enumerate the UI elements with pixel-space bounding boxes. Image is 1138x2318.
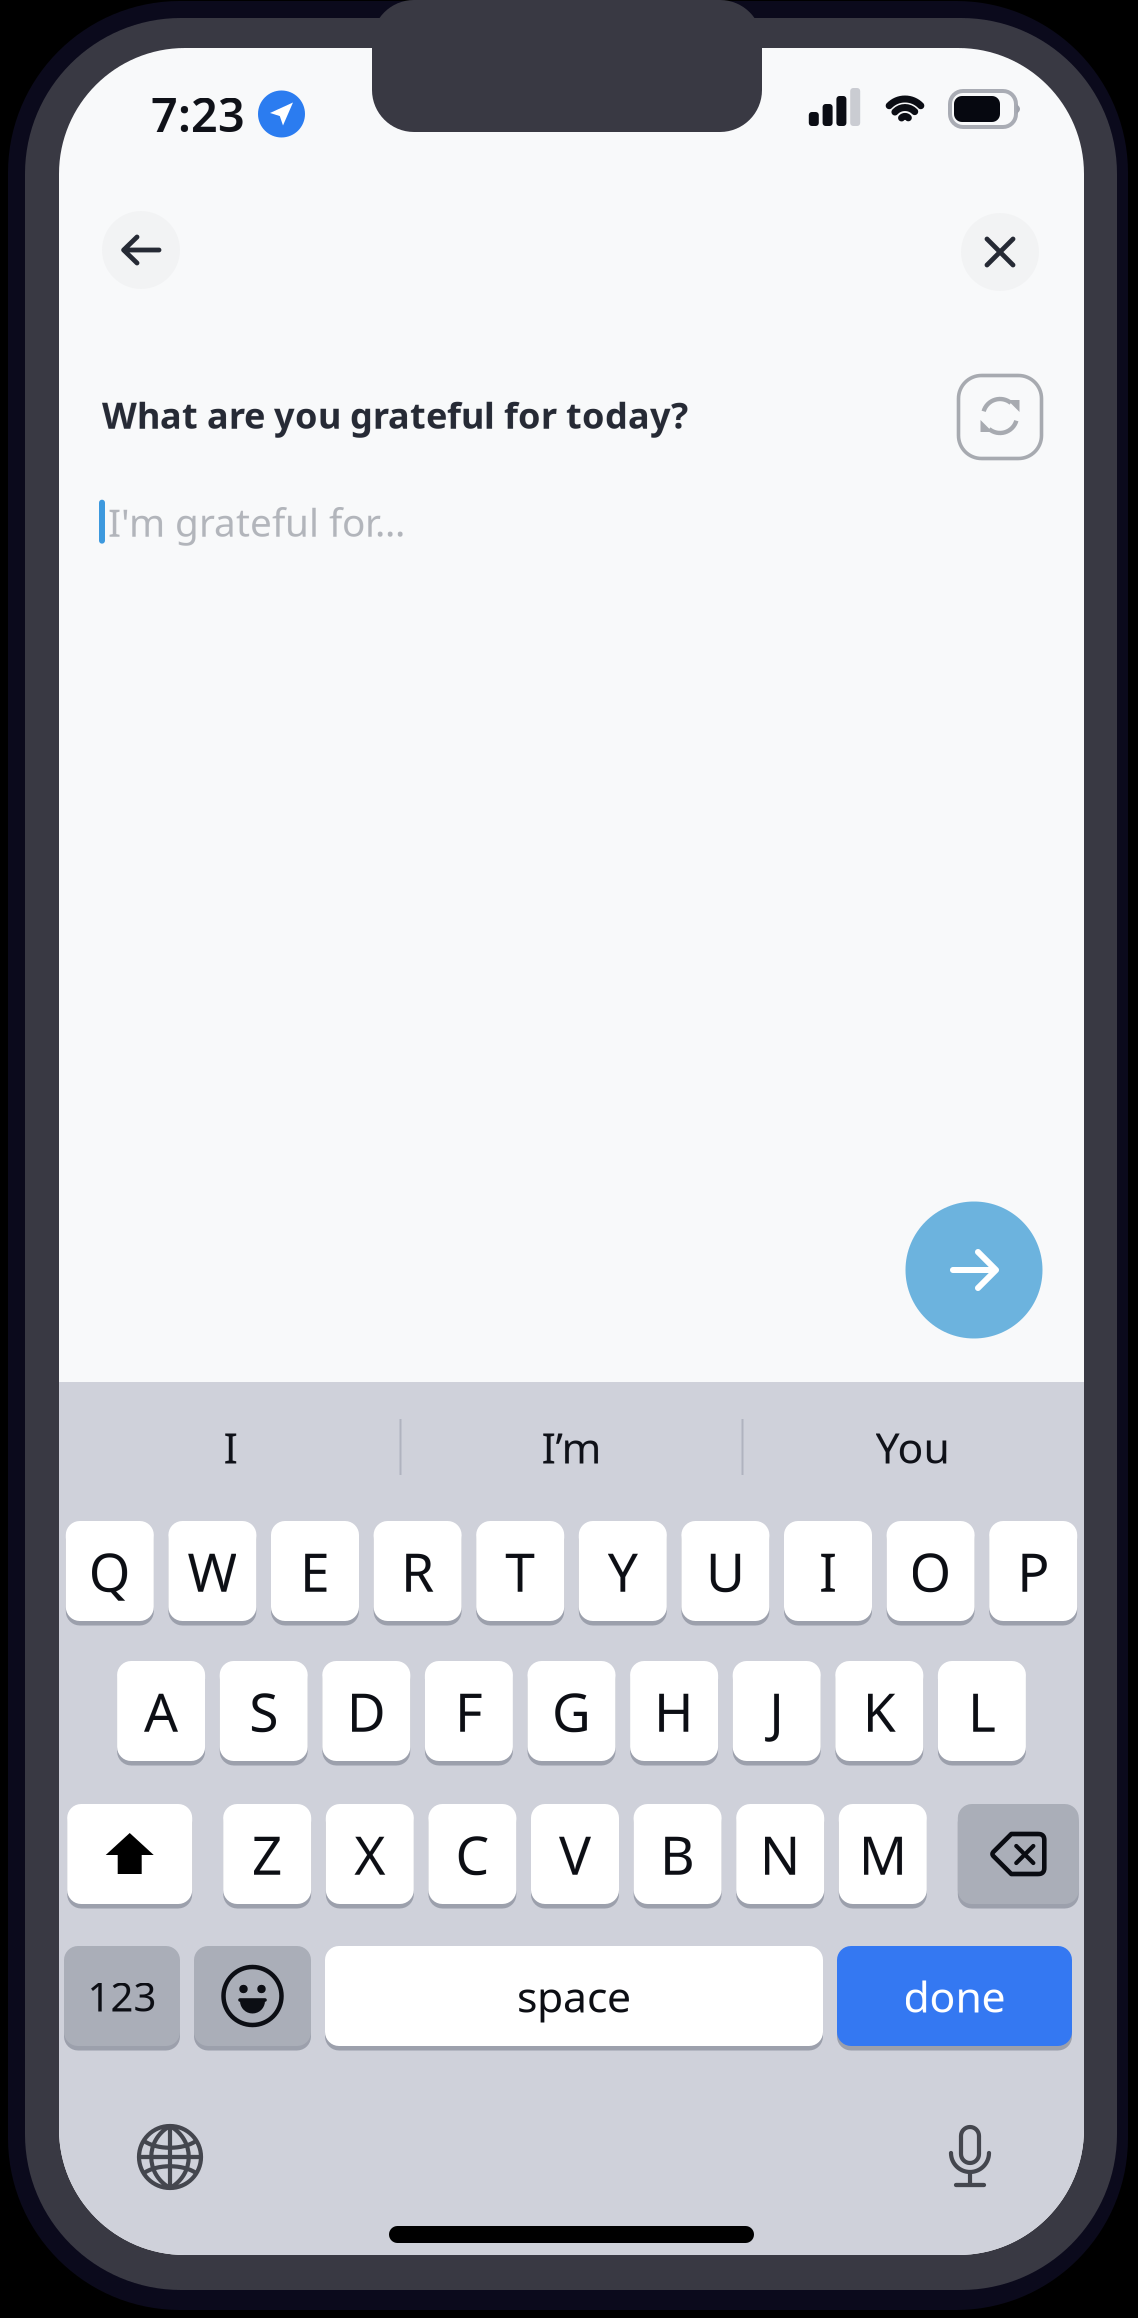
staticText: B — [660, 1819, 695, 1889]
staticText: X — [354, 1819, 385, 1889]
button[interactable]: Next keyboard — [120, 2107, 220, 2207]
button[interactable]: A — [117, 1656, 205, 1765]
staticText: 7:23 — [151, 83, 245, 145]
staticText: space — [517, 1968, 631, 2024]
staticText: E — [300, 1536, 330, 1606]
button[interactable]: U — [681, 1516, 769, 1625]
staticText: D — [347, 1676, 386, 1746]
staticText: You — [875, 1419, 949, 1475]
staticText: Q — [89, 1536, 131, 1606]
staticText: M — [859, 1819, 907, 1889]
button[interactable]: space — [325, 1941, 823, 2050]
button[interactable]: X — [326, 1799, 414, 1908]
button[interactable]: W — [168, 1516, 256, 1625]
staticText: S — [249, 1676, 278, 1746]
button[interactable]: V — [531, 1799, 619, 1908]
staticText: V — [559, 1819, 591, 1889]
button[interactable]: J — [733, 1656, 821, 1765]
staticText: P — [1017, 1536, 1049, 1606]
button[interactable]: Y — [579, 1516, 667, 1625]
button[interactable]: D — [322, 1656, 410, 1765]
button[interactable]: P — [989, 1516, 1077, 1625]
button[interactable]: I’m — [401, 1399, 741, 1495]
staticText: I — [819, 1536, 837, 1606]
staticText: L — [968, 1676, 996, 1746]
staticText: W — [187, 1536, 237, 1606]
button[interactable]: I — [784, 1516, 872, 1625]
staticText: R — [401, 1536, 434, 1606]
button[interactable]: Back — [97, 206, 185, 294]
staticText: 123 — [87, 1969, 156, 2022]
staticText: J — [769, 1676, 784, 1746]
staticText: What are you grateful for today? — [102, 391, 688, 439]
staticText: F — [455, 1676, 483, 1746]
button[interactable]: New prompt — [955, 372, 1045, 462]
button[interactable]: Q — [66, 1516, 154, 1625]
button[interactable]: You — [743, 1399, 1081, 1495]
button[interactable]: S — [220, 1656, 308, 1765]
staticText: N — [760, 1819, 801, 1889]
staticText: K — [863, 1676, 896, 1746]
staticText: I'm grateful for... — [108, 496, 405, 547]
button[interactable]: T — [476, 1516, 564, 1625]
button[interactable]: Dictation — [920, 2107, 1020, 2207]
staticText: C — [455, 1819, 489, 1889]
staticText: I — [223, 1419, 237, 1475]
button[interactable]: M — [839, 1799, 927, 1908]
button[interactable]: Delete — [958, 1799, 1079, 1908]
staticText: I’m — [541, 1419, 601, 1475]
button[interactable]: 123 — [64, 1941, 180, 2050]
staticText: Z — [252, 1819, 283, 1889]
staticText: done — [903, 1968, 1005, 2024]
staticText: U — [706, 1536, 745, 1606]
staticText: T — [505, 1536, 535, 1606]
button[interactable]: Shift — [67, 1799, 192, 1908]
button[interactable]: G — [527, 1656, 615, 1765]
button[interactable]: N — [736, 1799, 824, 1908]
button[interactable]: done — [837, 1941, 1072, 2050]
staticText: A — [144, 1676, 178, 1746]
staticText: H — [654, 1676, 694, 1746]
staticText: O — [910, 1536, 952, 1606]
button[interactable]: E — [271, 1516, 359, 1625]
button[interactable]: Close — [956, 208, 1044, 296]
staticText: Y — [608, 1536, 638, 1606]
button[interactable]: Continue — [901, 1197, 1046, 1342]
button[interactable]: I — [61, 1399, 399, 1495]
button[interactable]: L — [938, 1656, 1026, 1765]
button[interactable]: F — [425, 1656, 513, 1765]
button[interactable]: K — [835, 1656, 923, 1765]
button[interactable]: O — [887, 1516, 975, 1625]
button[interactable]: Emoji — [194, 1941, 311, 2050]
button[interactable]: C — [428, 1799, 516, 1908]
button[interactable]: Z — [223, 1799, 311, 1908]
button[interactable]: B — [634, 1799, 722, 1908]
button[interactable]: R — [374, 1516, 462, 1625]
button[interactable]: H — [630, 1656, 718, 1765]
staticText: G — [552, 1676, 591, 1746]
